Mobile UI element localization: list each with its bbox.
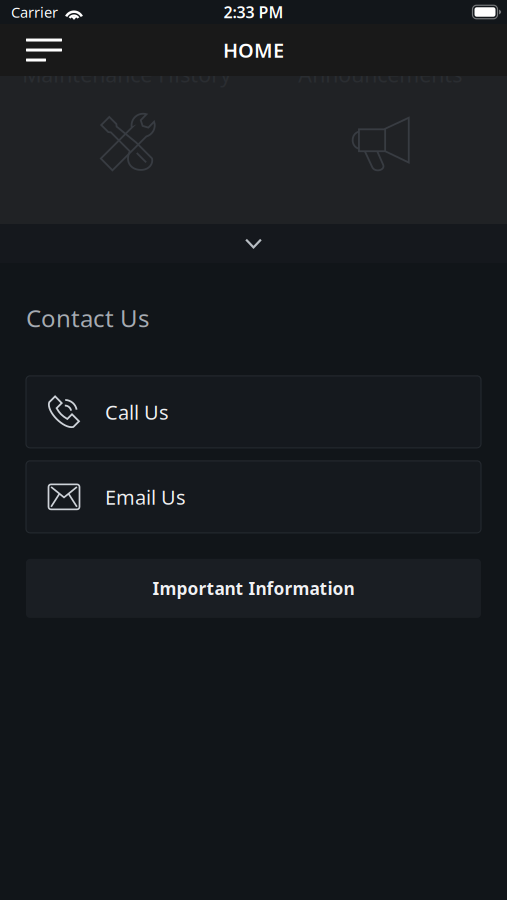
staticText: HOME [223,37,284,63]
staticText: Announcements [298,60,462,88]
button[interactable]: Call Us [26,376,481,448]
staticText: Maintenance History [22,60,231,88]
staticText: Important Information [152,577,354,600]
staticText: Call Us [105,399,169,425]
staticText: Email Us [105,484,186,510]
staticText: 2:33 PM [223,1,283,23]
button[interactable]: Important Information [26,559,481,618]
staticText: Contact Us [26,302,149,334]
staticText: Carrier [11,2,58,22]
button[interactable]: Email Us [26,461,481,533]
button[interactable]: Menu [18,28,70,71]
button[interactable]: Show more [0,224,507,263]
